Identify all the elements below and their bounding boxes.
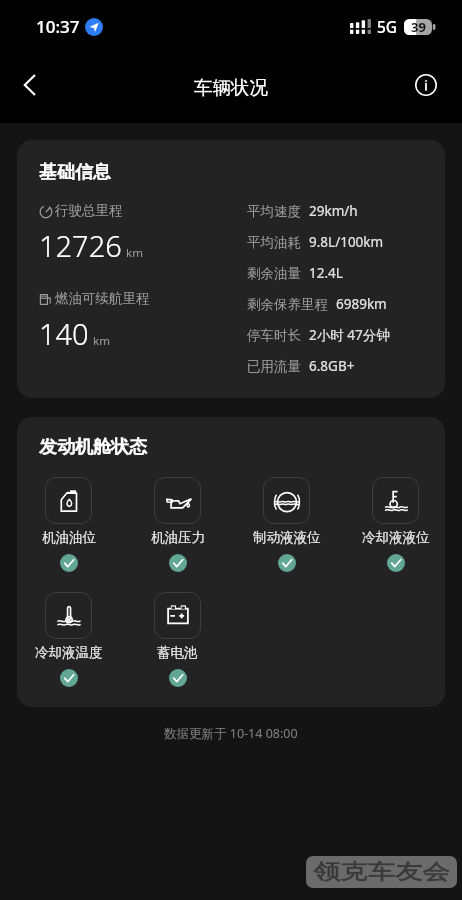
staticText: 基础信息 [39, 161, 111, 184]
staticText: 停车时长 [247, 327, 301, 344]
staticText: 29km/h [309, 202, 358, 220]
staticText: 冷却液液位 [362, 529, 430, 546]
button[interactable]: Back [5, 61, 53, 109]
staticText: 10:37 [36, 15, 80, 38]
staticText: 39 [411, 18, 426, 36]
button[interactable]: 冷却液温度 [17, 592, 123, 687]
button[interactable]: 制动液液位 [232, 477, 341, 572]
staticText: 已用流量 [247, 358, 301, 375]
staticText: 发动机舱状态 [39, 436, 147, 459]
staticText: 车辆状况 [194, 76, 268, 99]
staticText: km [126, 245, 143, 261]
staticText: 9.8L/100km [309, 233, 384, 251]
staticText: 2小时 47分钟 [309, 326, 390, 344]
staticText: 机油压力 [151, 529, 205, 546]
staticText: km [93, 333, 110, 349]
staticText: 5G [377, 16, 398, 37]
button[interactable]: 机油压力 [123, 477, 232, 572]
button[interactable]: 冷却液液位 [341, 477, 445, 572]
staticText: 行驶总里程 [55, 202, 123, 219]
button[interactable]: Info [402, 61, 450, 109]
staticText: 6.8GB+ [309, 357, 355, 375]
staticText: 制动液液位 [253, 529, 321, 546]
staticText: 剩余保养里程 [247, 296, 328, 313]
staticText: 数据更新于 10-14 08:00 [164, 725, 298, 742]
staticText: 剩余油量 [247, 265, 301, 282]
staticText: 平均速度 [247, 203, 301, 220]
staticText: 平均油耗 [247, 234, 301, 251]
staticText: 领克车友会 [313, 859, 450, 885]
staticText: 140 [39, 314, 89, 353]
staticText: 蓄电池 [157, 644, 198, 661]
staticText: 冷却液温度 [35, 644, 103, 661]
button[interactable]: 蓄电池 [123, 592, 232, 687]
staticText: 机油油位 [42, 529, 96, 546]
staticText: 燃油可续航里程 [55, 290, 150, 307]
staticText: 12726 [39, 226, 122, 265]
button[interactable]: 机油油位 [17, 477, 123, 572]
staticText: 6989km [336, 295, 387, 313]
staticText: 12.4L [309, 264, 343, 282]
